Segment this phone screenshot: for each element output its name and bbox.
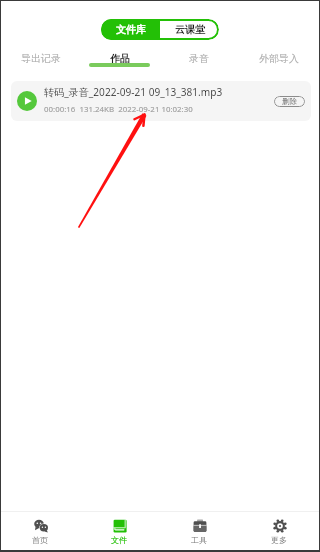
staticText: 首页 xyxy=(32,535,49,545)
button[interactable]: 首页 xyxy=(1,512,80,550)
staticText: 作品 xyxy=(110,52,130,64)
staticText: 外部导入 xyxy=(259,52,299,64)
button[interactable]: 导出记录 xyxy=(1,48,80,68)
button[interactable]: Play xyxy=(11,81,311,121)
button[interactable]: 文件 xyxy=(80,512,159,550)
button[interactable]: 文件库 xyxy=(101,19,160,40)
staticText: 云课堂 xyxy=(175,23,205,36)
staticText: 删除 xyxy=(282,97,298,107)
staticText: 00:00:16 131.24KB 2022-09-21 10:02:30 xyxy=(44,104,193,115)
staticText: 导出记录 xyxy=(21,52,61,64)
button[interactable]: 录音 xyxy=(159,48,239,68)
button[interactable]: 外部导入 xyxy=(239,48,319,68)
button[interactable]: 云课堂 xyxy=(160,19,219,40)
staticText: 转码_录音_2022-09-21 09_13_381.mp3 xyxy=(44,85,223,99)
staticText: 更多 xyxy=(271,535,288,545)
button[interactable]: 作品 xyxy=(80,48,159,68)
staticText: 文件 xyxy=(111,535,128,545)
staticText: 工具 xyxy=(191,535,208,545)
button[interactable]: Play xyxy=(17,91,37,111)
staticText: 录音 xyxy=(189,52,209,64)
button[interactable]: 更多 xyxy=(239,512,319,550)
staticText: 文件库 xyxy=(116,23,146,36)
button[interactable]: 删除 xyxy=(274,96,305,107)
button[interactable]: 工具 xyxy=(159,512,239,550)
